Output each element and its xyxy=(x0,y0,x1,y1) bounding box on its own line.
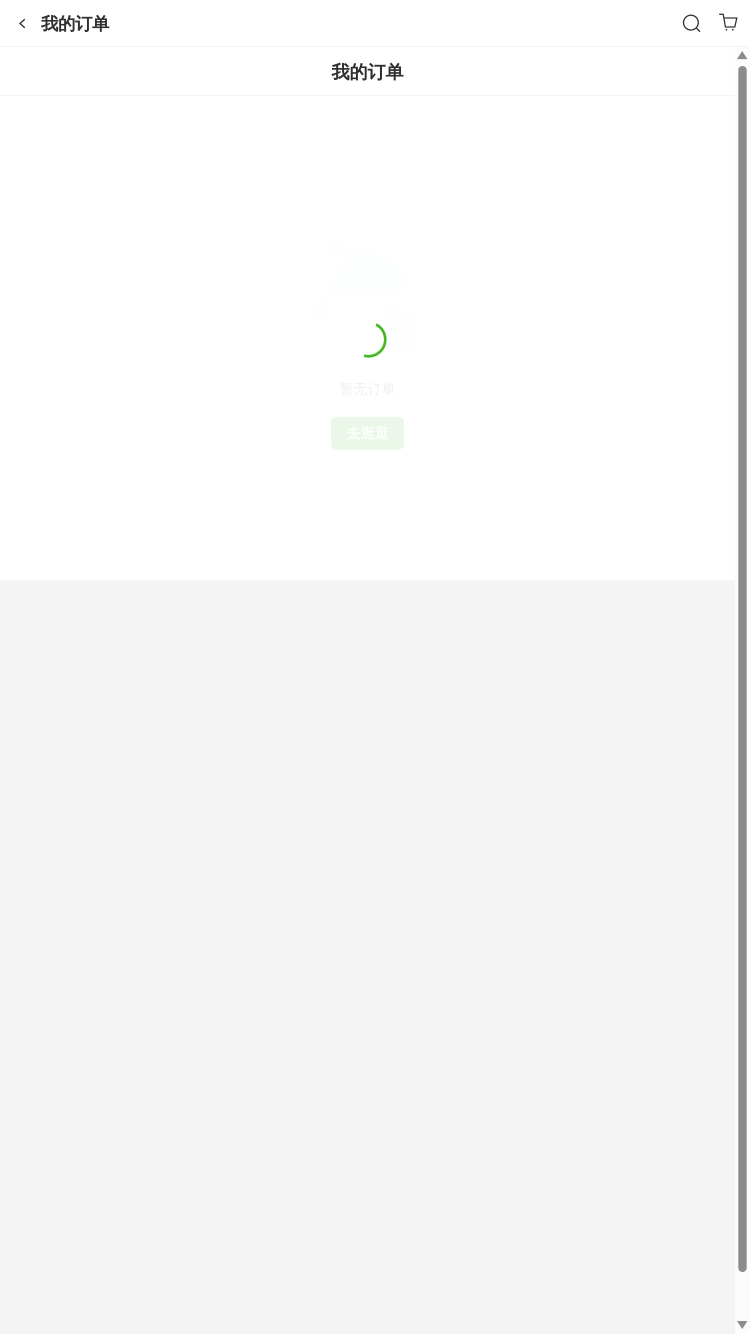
button[interactable]: Shopping cart xyxy=(706,0,750,46)
staticText: 暂无订单 xyxy=(339,380,395,398)
staticText: 我的订单 xyxy=(41,13,109,35)
staticText: 去逛逛 xyxy=(346,424,388,442)
button[interactable]: 去逛逛 xyxy=(331,417,404,449)
button[interactable]: Search xyxy=(678,0,706,46)
staticText: 我的订单 xyxy=(331,61,403,84)
button[interactable]: Back xyxy=(0,0,41,46)
